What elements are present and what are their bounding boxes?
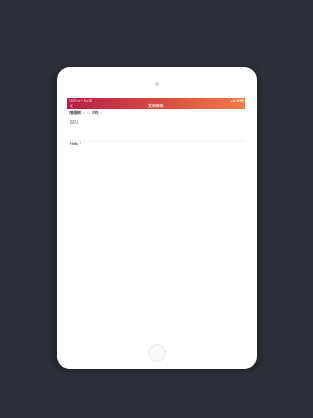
staticText: 周一 8月30 bbox=[77, 99, 92, 103]
staticText: 文本编辑 bbox=[148, 103, 164, 108]
button[interactable]: I bbox=[73, 119, 75, 124]
button[interactable]: 14:51 bbox=[67, 98, 245, 109]
staticText: Hello bbox=[70, 141, 79, 147]
button[interactable]: Back bbox=[68, 103, 74, 109]
button[interactable]: Home bbox=[148, 344, 166, 362]
button[interactable]: 微软雅黑 bbox=[69, 110, 80, 115]
button[interactable]: Expand bbox=[99, 112, 102, 114]
button[interactable]: U bbox=[75, 119, 78, 124]
button[interactable]: Expand bbox=[82, 112, 85, 114]
staticText: 14:51 bbox=[69, 99, 77, 103]
button[interactable]: Expand bbox=[87, 112, 90, 114]
button[interactable]: B bbox=[70, 119, 73, 124]
button[interactable]: 四号 bbox=[92, 110, 98, 115]
